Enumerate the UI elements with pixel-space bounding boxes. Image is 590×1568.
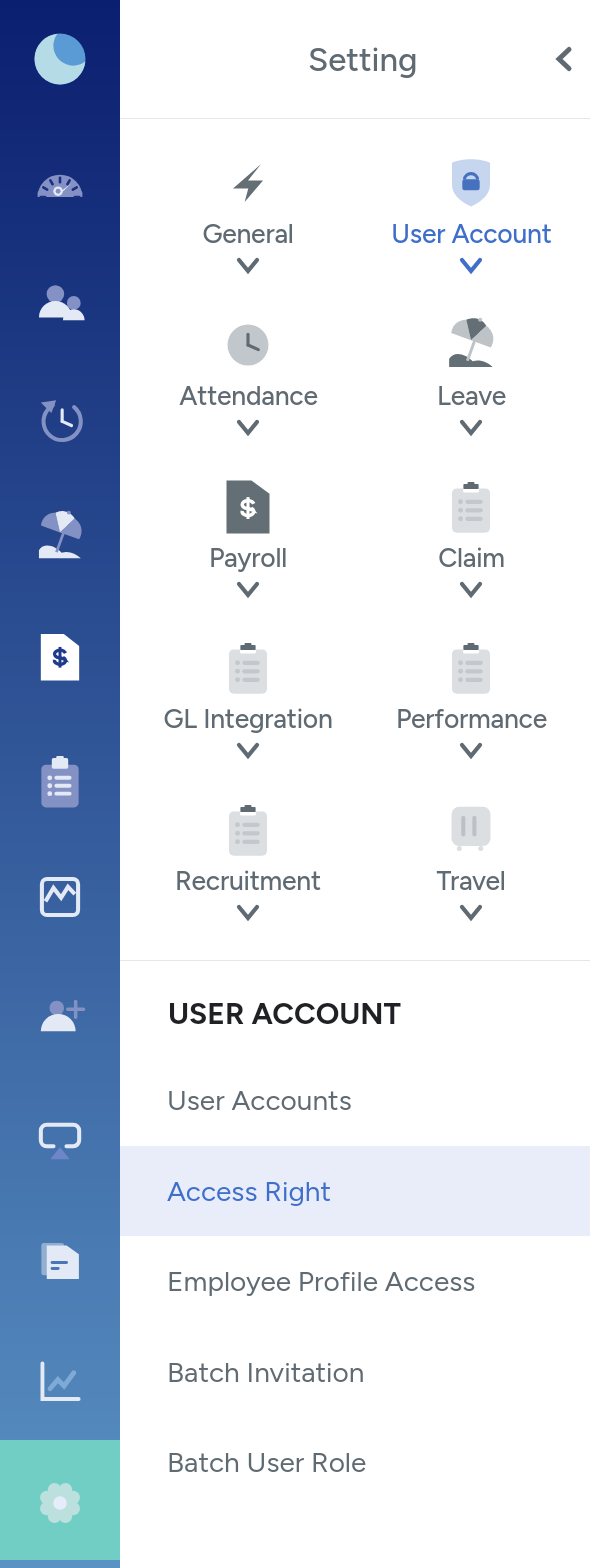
staticText: Setting bbox=[308, 40, 418, 80]
staticText: USER ACCOUNT bbox=[168, 995, 402, 1031]
button[interactable]: Employee Profile Access bbox=[0, 1236, 590, 1326]
button[interactable]: Batch Invitation bbox=[0, 1327, 590, 1417]
button[interactable]: Recruitment bbox=[33, 991, 87, 1045]
staticText: User Account bbox=[391, 218, 552, 250]
button[interactable]: User Accounts bbox=[0, 1055, 590, 1145]
button[interactable]: Access Right bbox=[0, 1146, 590, 1236]
button[interactable]: Documents bbox=[33, 1234, 87, 1288]
staticText: Leave bbox=[437, 380, 506, 412]
button[interactable]: Analytics bbox=[33, 1355, 87, 1409]
staticText: Attendance bbox=[179, 380, 318, 412]
button[interactable]: Leave bbox=[371, 317, 571, 435]
staticText: Payroll bbox=[209, 542, 287, 574]
staticText: Recruitment bbox=[175, 865, 321, 897]
staticText: General bbox=[202, 218, 294, 250]
staticText: GL Integration bbox=[163, 703, 333, 735]
staticText: Claim bbox=[438, 542, 505, 574]
button[interactable]: Claim bbox=[33, 754, 87, 808]
button[interactable]: Settings bbox=[33, 1476, 87, 1530]
button[interactable]: General bbox=[148, 155, 348, 273]
button[interactable]: Home bbox=[33, 32, 87, 86]
button[interactable]: Reports bbox=[33, 870, 87, 924]
staticText: Performance bbox=[396, 703, 547, 735]
button[interactable]: GL Integration bbox=[148, 640, 348, 758]
button[interactable]: Settings bbox=[0, 1440, 120, 1560]
staticText: Employee Profile Access bbox=[167, 1264, 476, 1298]
button[interactable]: Performance bbox=[371, 640, 571, 758]
button[interactable]: Claim bbox=[371, 479, 571, 597]
button[interactable]: Back bbox=[536, 31, 590, 87]
button[interactable]: Training bbox=[33, 1112, 87, 1166]
button[interactable]: Employees bbox=[33, 274, 87, 328]
button[interactable]: Attendance bbox=[148, 317, 348, 435]
button[interactable]: Batch User Role bbox=[0, 1417, 590, 1507]
staticText: Travel bbox=[436, 865, 506, 897]
button[interactable]: Recruitment bbox=[148, 802, 348, 920]
button[interactable]: Payroll bbox=[148, 479, 348, 597]
button[interactable]: User Account bbox=[371, 155, 571, 273]
button[interactable]: Dashboard bbox=[33, 156, 87, 210]
button[interactable]: History bbox=[33, 392, 87, 446]
staticText: Batch User Role bbox=[167, 1445, 367, 1479]
staticText: User Accounts bbox=[167, 1083, 352, 1117]
staticText: Access Right bbox=[167, 1174, 332, 1208]
button[interactable]: Leave bbox=[33, 510, 87, 564]
button[interactable]: Payroll bbox=[33, 630, 87, 684]
staticText: Batch Invitation bbox=[167, 1355, 365, 1389]
button[interactable]: Travel bbox=[371, 802, 571, 920]
